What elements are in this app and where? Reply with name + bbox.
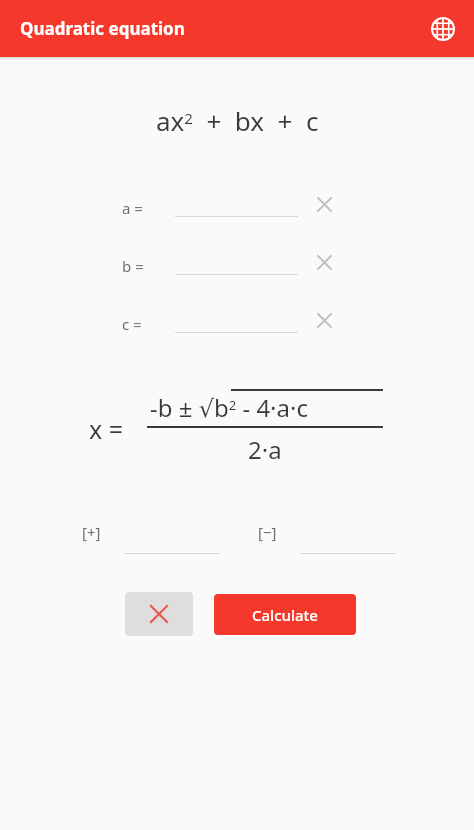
staticText: [+] [82,522,101,542]
button[interactable] [175,187,298,217]
staticText: [−] [258,522,277,542]
staticText: a = [122,198,143,218]
button[interactable] [175,303,298,333]
button[interactable]: Clear b = [313,251,335,273]
staticText: -b ± √b2 - 4·a·c [150,391,308,424]
button[interactable] [124,518,220,554]
button[interactable]: Language [426,12,460,46]
button[interactable]: Clear c = [313,309,335,331]
staticText: c = [122,314,142,334]
staticText: Quadratic equation [20,17,185,40]
button[interactable]: Clear a = [313,193,335,215]
staticText: b = [122,256,144,276]
staticText: x = [89,412,124,446]
button[interactable] [300,518,396,554]
staticText: 2·a [248,433,282,466]
staticText: Calculate [252,605,318,625]
button[interactable] [175,245,298,275]
button[interactable]: Calculate [214,594,356,635]
staticText: ax2 + bx + c [156,103,319,138]
button[interactable]: Clear all [125,592,193,636]
